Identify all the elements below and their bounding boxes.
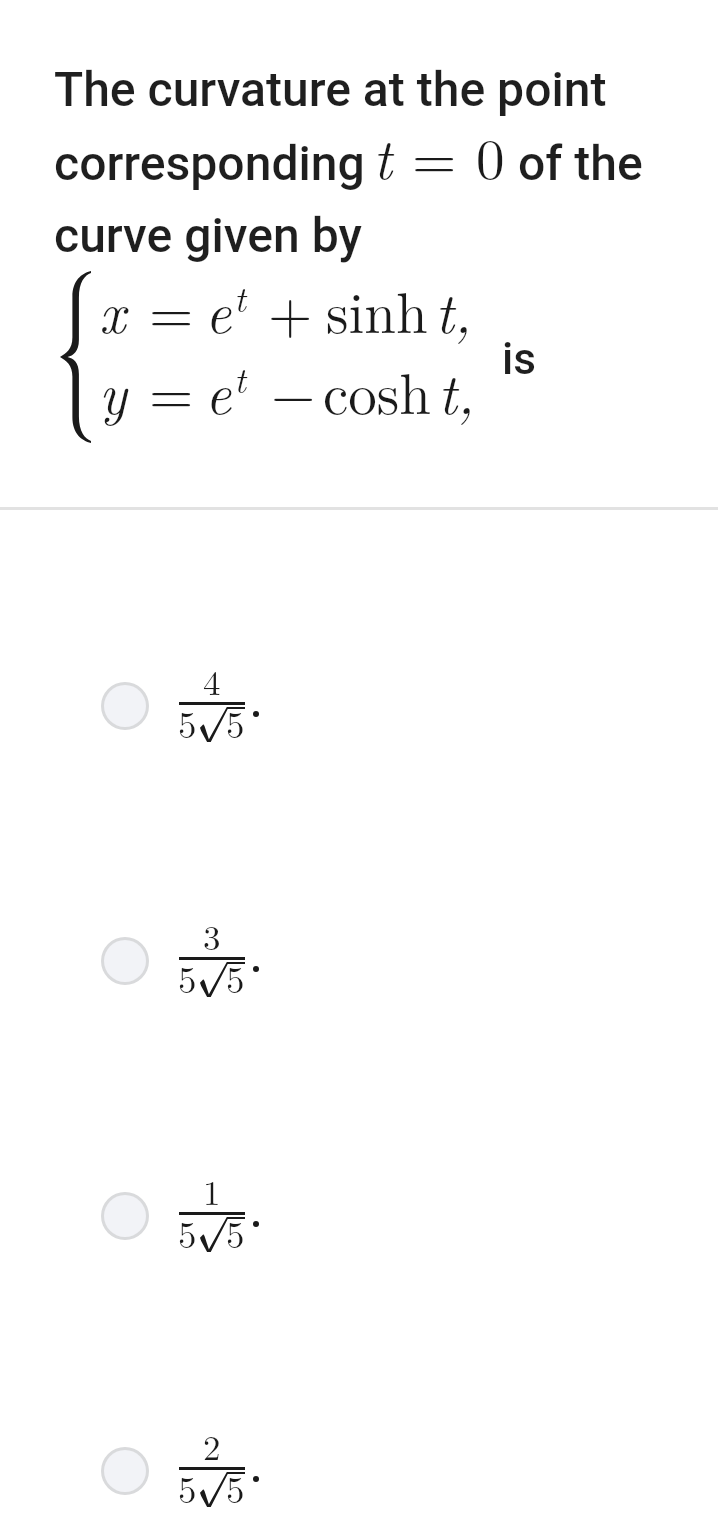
staticText: 4 [203,656,221,706]
staticText: x [99,269,126,350]
staticText: The curvature at the point [54,61,607,117]
staticText: t [234,271,246,322]
staticText: 5 [226,696,245,748]
staticText: curve given by [54,207,362,263]
staticText: 5 [178,1461,197,1513]
staticText: 5 [226,1206,245,1258]
staticText: t [373,115,392,196]
staticText: e [205,350,232,431]
staticText: 0 [476,115,505,196]
staticText: 3 [203,911,221,961]
button[interactable]: Answer option 2 over 5 square root of 5 [0,1406,718,1534]
staticText: 5 [178,951,197,1003]
staticText: of the [518,135,643,191]
staticText: = [149,350,194,431]
staticText: 5 [178,1206,197,1258]
staticText: + [268,269,313,350]
staticText: 1 [203,1166,221,1216]
staticText: cosh [323,350,431,431]
staticText: t, [438,350,475,431]
staticText: is [502,333,536,385]
button[interactable]: Answer option 1 over 5 square root of 5 [0,1151,718,1279]
staticText: 2 [203,1421,221,1471]
staticText: − [271,350,316,431]
staticText: corresponding [54,135,365,191]
staticText: e [205,269,232,350]
staticText: 5 [178,696,197,748]
button[interactable]: Answer option 4 over 5 square root of 5 [0,641,718,769]
staticText: = [149,269,194,350]
staticText: t, [435,269,472,350]
staticText: sinh [326,269,428,350]
staticText: = [412,115,457,196]
staticText: 5 [226,1461,245,1513]
button[interactable]: Answer option 3 over 5 square root of 5 [0,896,718,1024]
staticText: t [234,352,246,403]
staticText: 5 [226,951,245,1003]
staticText: y [99,350,127,431]
